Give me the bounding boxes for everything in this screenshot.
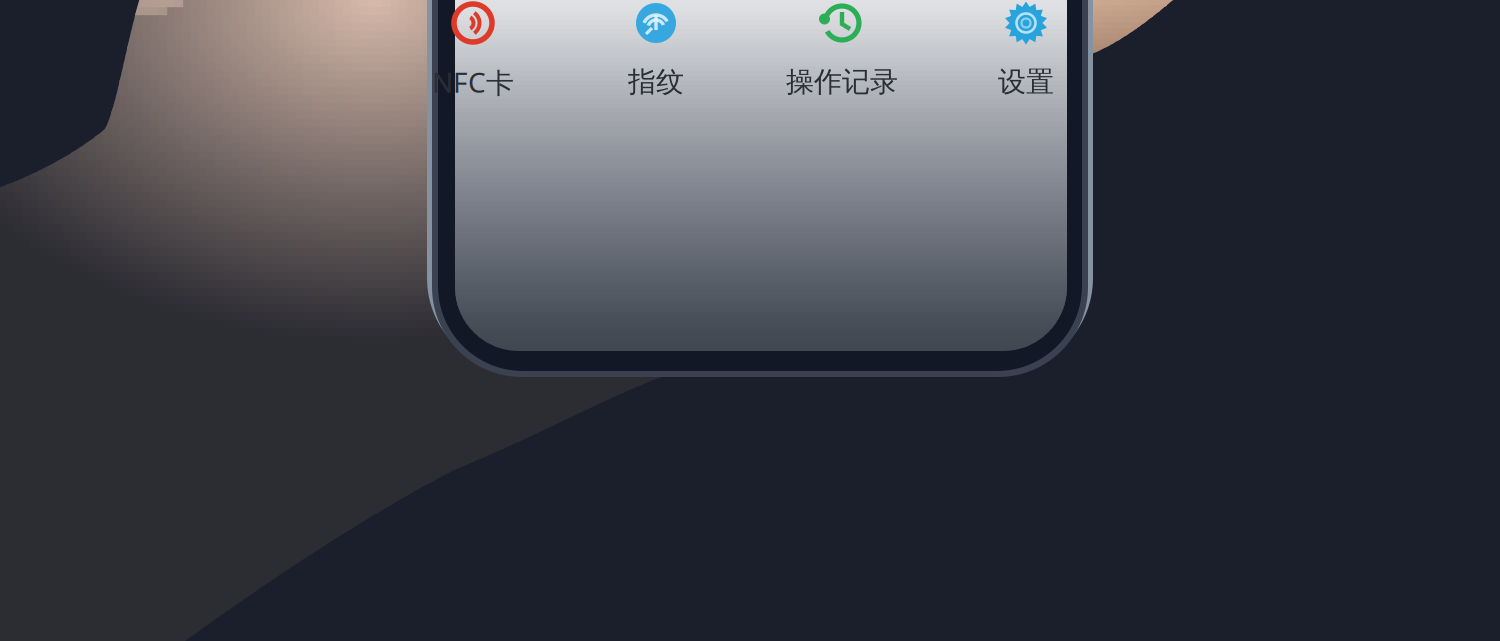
staticText: 设置 <box>998 65 1054 99</box>
staticText: 操作记录 <box>786 65 898 99</box>
button[interactable]: 操作记录 <box>752 0 932 114</box>
staticText: 指纹 <box>628 65 684 99</box>
button[interactable]: 设置 <box>936 0 1116 114</box>
staticText: NFC卡 <box>432 63 514 101</box>
button[interactable]: NFC卡 <box>383 0 563 114</box>
button[interactable]: 指纹 <box>566 0 746 114</box>
